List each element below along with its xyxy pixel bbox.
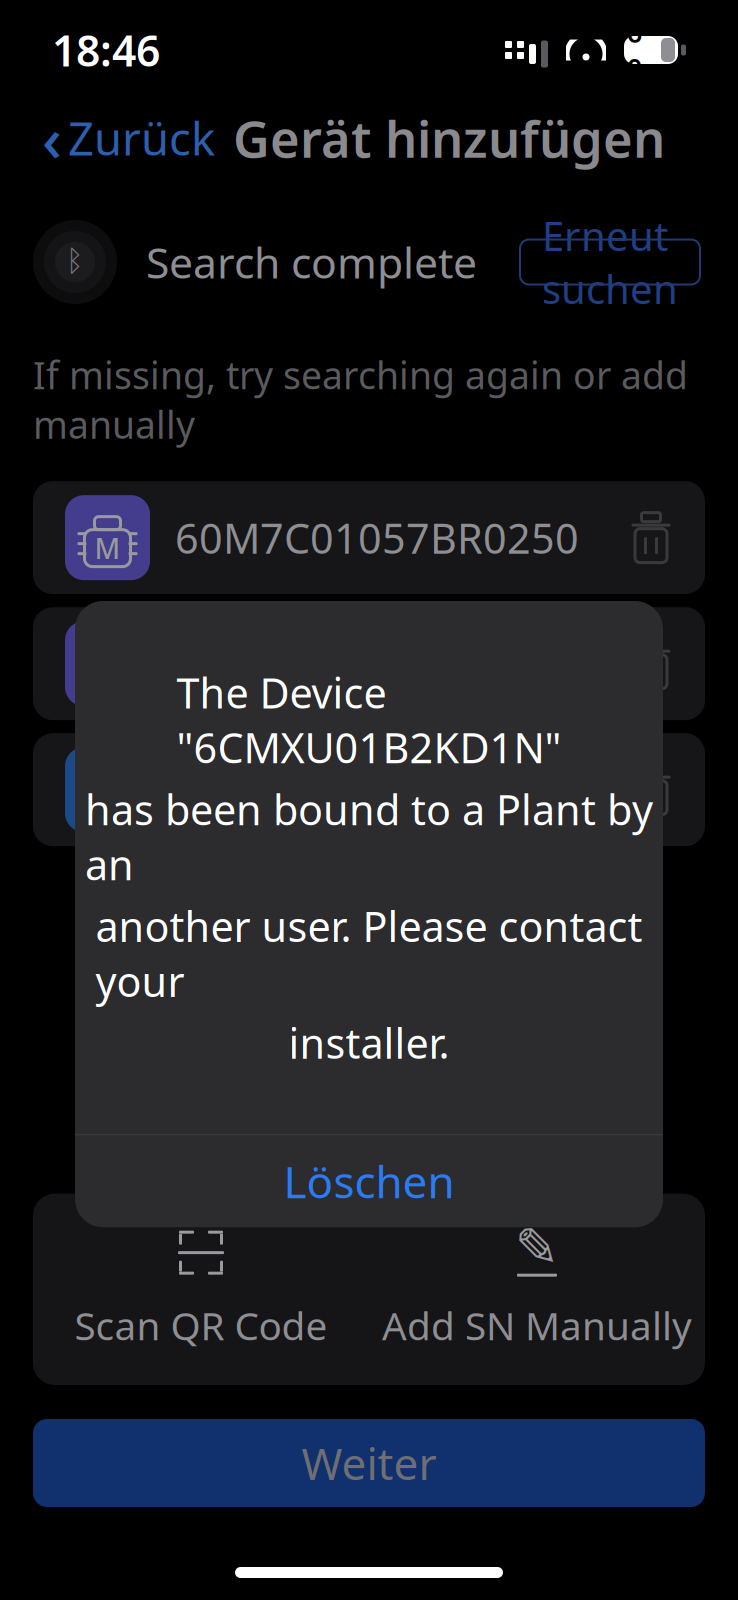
button[interactable]: M bbox=[33, 733, 705, 846]
staticText: ᛒ bbox=[66, 248, 84, 276]
button[interactable]: Erneut suchen bbox=[520, 239, 700, 284]
staticText: Scan QR Code bbox=[74, 1300, 327, 1351]
button[interactable]: Scan QR Code bbox=[33, 1194, 369, 1385]
button[interactable]: ‹ bbox=[42, 89, 221, 187]
button[interactable]: M bbox=[33, 607, 705, 720]
staticText: If missing, try searching again or add m… bbox=[33, 350, 688, 449]
staticText: Gerät hinzufügen bbox=[233, 104, 665, 172]
staticText: 18:46 bbox=[52, 22, 160, 78]
staticText: has been bound to a Plant by an bbox=[85, 782, 653, 892]
staticText: Zurück bbox=[68, 108, 215, 168]
staticText: The Device "6CMXU01B2KD1N" bbox=[176, 665, 561, 775]
staticText: Search complete bbox=[146, 234, 477, 290]
staticText: M bbox=[94, 782, 120, 819]
button[interactable]: M bbox=[33, 481, 705, 594]
staticText: installer. bbox=[288, 1015, 449, 1070]
staticText: Löschen bbox=[283, 1152, 454, 1210]
staticText: 60 bbox=[627, 15, 642, 85]
staticText: 60M200107Y6B12U9 bbox=[175, 636, 580, 691]
staticText: ‹ bbox=[42, 97, 62, 179]
staticText: another user. Please contact your bbox=[95, 899, 642, 1008]
staticText: M bbox=[94, 530, 120, 567]
staticText: 60M7C01057BR0250 bbox=[175, 510, 579, 565]
staticText: ✎ bbox=[514, 1217, 559, 1278]
staticText: Add SN Manually bbox=[382, 1300, 692, 1351]
button[interactable]: ✎ bbox=[369, 1194, 705, 1385]
staticText: 60M100108X4C33K2 bbox=[175, 762, 576, 817]
button[interactable]: Weiter bbox=[33, 1419, 705, 1507]
button[interactable]: Löschen bbox=[75, 1135, 663, 1227]
staticText: Erneut suchen bbox=[542, 209, 678, 315]
staticText: Weiter bbox=[301, 1434, 436, 1492]
